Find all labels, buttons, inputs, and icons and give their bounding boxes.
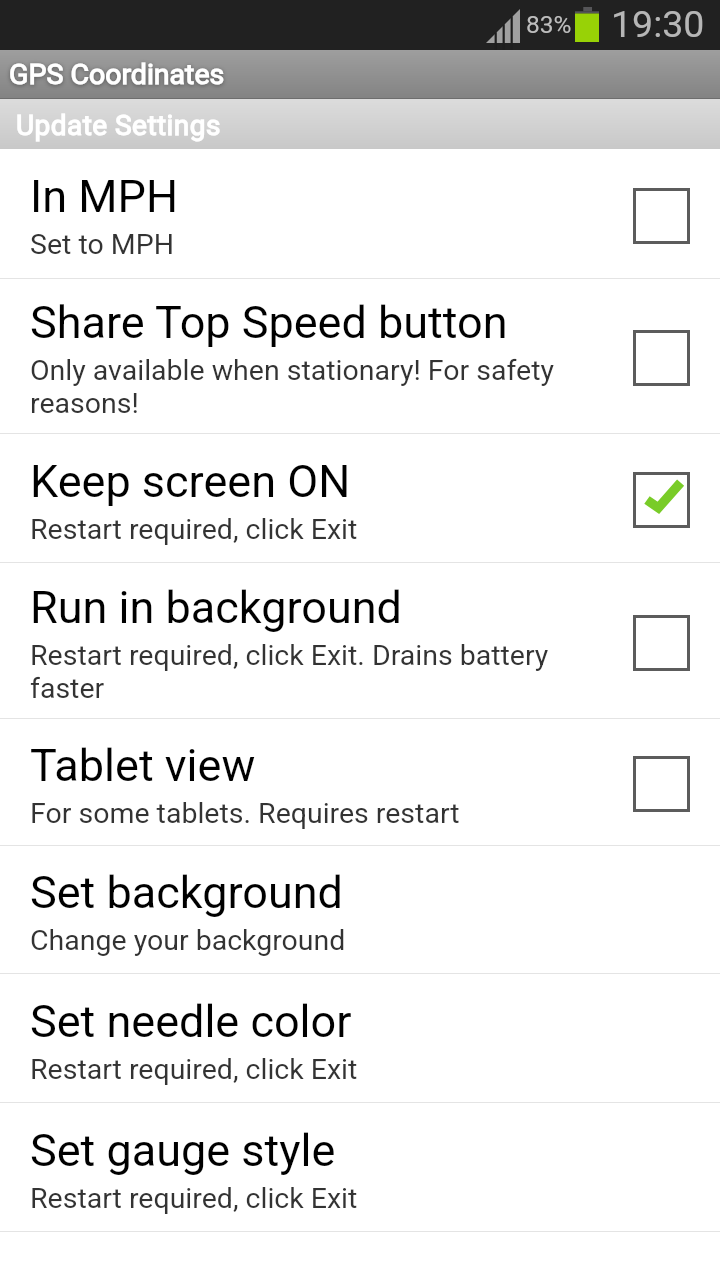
button[interactable]: Unchecked checkbox xyxy=(633,756,690,812)
staticText: Restart required, click Exit xyxy=(30,513,358,546)
button[interactable]: Set needle color xyxy=(0,974,720,1102)
button[interactable]: In MPH xyxy=(0,149,720,278)
button[interactable]: Run in background xyxy=(0,563,720,718)
staticText: Set gauge style xyxy=(30,1124,336,1177)
staticText: Restart required, click Exit. Drains bat… xyxy=(30,639,575,705)
staticText: 19:30 xyxy=(611,2,705,46)
button[interactable]: Set gauge style xyxy=(0,1103,720,1231)
button[interactable]: Unchecked checkbox xyxy=(633,188,690,244)
staticText: Update Settings xyxy=(16,109,221,142)
staticText: Restart required, click Exit xyxy=(30,1182,358,1215)
staticText: Share Top Speed button xyxy=(30,296,508,349)
staticText: Set to MPH xyxy=(30,228,174,261)
button[interactable]: Unchecked checkbox xyxy=(633,330,690,386)
button[interactable]: Keep screen ON xyxy=(0,434,720,562)
staticText: Only available when stationary! For safe… xyxy=(30,354,575,420)
staticText: Run in background xyxy=(30,581,402,634)
staticText: 83% xyxy=(526,10,572,39)
staticText: In MPH xyxy=(30,170,179,223)
button[interactable]: Share Top Speed button xyxy=(0,279,720,433)
staticText: Set background xyxy=(30,866,343,919)
button[interactable]: Unchecked checkbox xyxy=(633,615,690,671)
other: Mobile signal strength xyxy=(486,9,520,43)
staticText: Keep screen ON xyxy=(30,455,351,508)
staticText: For some tablets. Requires restart xyxy=(30,797,460,830)
staticText: GPS Coordinates xyxy=(9,58,225,91)
staticText: Change your background xyxy=(30,924,346,957)
staticText: Set needle color xyxy=(30,995,352,1048)
button[interactable]: Set background xyxy=(0,846,720,973)
staticText: Restart required, click Exit xyxy=(30,1053,358,1086)
button[interactable]: Checked checkbox xyxy=(633,472,690,528)
other: Battery 83 percent xyxy=(575,7,599,42)
staticText: Tablet view xyxy=(30,739,256,792)
button[interactable]: Tablet view xyxy=(0,719,720,845)
